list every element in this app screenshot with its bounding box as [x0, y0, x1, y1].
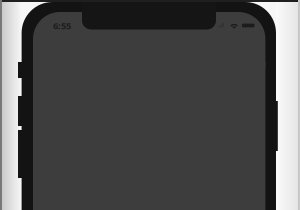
staticText: 6:55: [53, 19, 71, 32]
